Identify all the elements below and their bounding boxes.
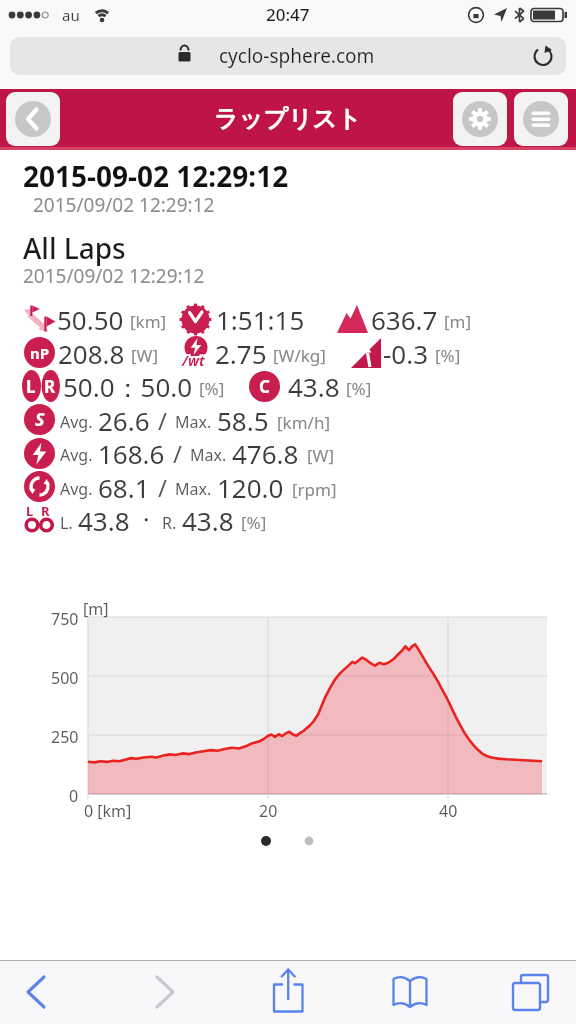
- button[interactable]: [16, 970, 60, 1014]
- staticText: /wt: [180, 352, 203, 371]
- staticText: L.: [60, 512, 73, 534]
- staticText: /wt: [182, 351, 205, 370]
- staticText: Max.: [190, 444, 227, 466]
- staticText: 500: [51, 667, 79, 689]
- staticText: /wt: [182, 351, 205, 370]
- staticText: /: [158, 471, 167, 504]
- staticText: 0 [km]: [84, 800, 132, 822]
- staticText: au: [62, 5, 80, 25]
- staticText: 1:51:15: [216, 302, 305, 336]
- staticText: /wt: [182, 349, 205, 368]
- staticText: Avg.: [60, 478, 93, 500]
- staticText: 43.8: [288, 369, 340, 403]
- staticText: 20:47: [266, 3, 310, 26]
- staticText: [%]: [199, 377, 225, 400]
- staticText: 58.5: [217, 403, 269, 437]
- staticText: [W]: [307, 444, 334, 467]
- staticText: Avg.: [60, 411, 93, 433]
- staticText: /wt: [184, 352, 207, 371]
- button[interactable]: [388, 970, 432, 1014]
- staticText: 208.8: [58, 336, 125, 370]
- staticText: [%]: [241, 511, 267, 534]
- staticText: /: [158, 404, 167, 437]
- button[interactable]: [250, 830, 326, 852]
- button[interactable]: [532, 45, 554, 67]
- staticText: [W]: [131, 344, 158, 367]
- staticText: -0.3: [383, 336, 429, 370]
- staticText: /wt: [182, 352, 205, 371]
- staticText: R.: [162, 512, 177, 534]
- staticText: [W/kg]: [273, 344, 326, 367]
- staticText: 40: [439, 800, 458, 822]
- staticText: /wt: [180, 349, 203, 368]
- staticText: L: [26, 375, 36, 398]
- staticText: [km/h]: [277, 411, 330, 434]
- staticText: 2015-09-02 12:29:12: [23, 157, 289, 195]
- staticText: 2.75: [215, 336, 267, 370]
- staticText: 250: [51, 726, 79, 748]
- staticText: [rpm]: [292, 478, 337, 501]
- staticText: 2015/09/02 12:29:12: [33, 192, 215, 218]
- button[interactable]: [453, 92, 507, 146]
- staticText: R: [44, 375, 56, 398]
- button[interactable]: [143, 970, 187, 1014]
- staticText: [m]: [83, 598, 109, 620]
- staticText: Max.: [175, 411, 212, 433]
- staticText: 120.0: [217, 470, 284, 504]
- staticText: 750: [51, 608, 79, 630]
- staticText: 50.0：50.0: [63, 369, 193, 403]
- button[interactable]: [514, 92, 568, 146]
- staticText: nP: [30, 343, 50, 363]
- staticText: /wt: [184, 351, 207, 370]
- staticText: 476.8: [232, 436, 299, 470]
- staticText: S: [35, 407, 45, 432]
- staticText: [km]: [130, 310, 167, 333]
- staticText: R: [41, 502, 50, 520]
- staticText: ラップリスト: [214, 104, 362, 134]
- button[interactable]: [508, 968, 554, 1014]
- staticText: 168.6: [98, 436, 165, 470]
- staticText: 43.8: [182, 503, 234, 537]
- button[interactable]: [10, 37, 566, 75]
- staticText: C: [259, 375, 270, 398]
- button[interactable]: [266, 964, 310, 1016]
- button[interactable]: [6, 92, 60, 146]
- staticText: 68.1: [98, 470, 150, 504]
- staticText: 43.8: [78, 503, 130, 537]
- staticText: 20: [259, 800, 278, 822]
- staticText: [m]: [444, 310, 472, 333]
- staticText: All Laps: [23, 229, 126, 267]
- staticText: Avg.: [60, 444, 93, 466]
- staticText: 2015/09/02 12:29:12: [23, 263, 205, 289]
- staticText: 636.7: [371, 302, 438, 336]
- staticText: 50.50: [57, 302, 124, 336]
- staticText: /wt: [184, 349, 207, 368]
- staticText: /: [173, 437, 182, 470]
- staticText: [%]: [435, 344, 461, 367]
- staticText: /wt: [180, 351, 203, 370]
- staticText: 0: [69, 785, 79, 807]
- staticText: 26.6: [98, 403, 150, 437]
- staticText: [%]: [346, 377, 372, 400]
- staticText: L: [26, 502, 34, 520]
- staticText: cyclo-sphere.com: [219, 43, 375, 69]
- staticText: ・: [136, 508, 156, 533]
- staticText: Max.: [175, 478, 212, 500]
